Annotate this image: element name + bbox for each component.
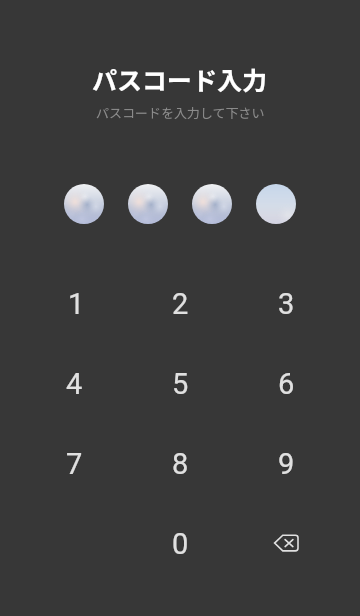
staticText: 9	[278, 447, 295, 481]
button[interactable]: 6	[250, 348, 322, 420]
staticText: 5	[172, 367, 189, 401]
staticText: 8	[172, 447, 189, 481]
staticText: 7	[66, 447, 83, 481]
button[interactable]: 5	[144, 348, 216, 420]
button[interactable]: 8	[144, 428, 216, 500]
button[interactable]: 2	[144, 268, 216, 340]
button[interactable]: 7	[38, 428, 110, 500]
button[interactable]: 4	[38, 348, 110, 420]
staticText: 1	[68, 287, 85, 321]
staticText: 3	[278, 287, 295, 321]
button[interactable]: 3	[250, 268, 322, 340]
staticText: パスコードを入力して下さい	[96, 103, 265, 122]
staticText: 6	[278, 367, 295, 401]
staticText: 2	[172, 287, 189, 321]
button[interactable]: 9	[250, 428, 322, 500]
staticText: 0	[172, 527, 189, 561]
button[interactable]: 1	[38, 268, 110, 340]
staticText: 4	[66, 367, 83, 401]
button[interactable]: Delete	[254, 512, 318, 576]
staticText: パスコード入力	[92, 61, 268, 97]
button[interactable]: 0	[144, 508, 216, 580]
